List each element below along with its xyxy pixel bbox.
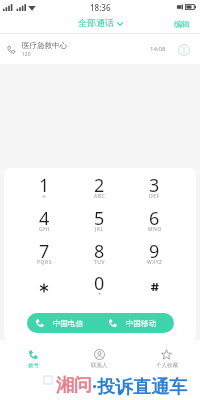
button[interactable]: 3 bbox=[127, 174, 182, 206]
staticText: 9 bbox=[149, 239, 160, 264]
staticText: 18:36 bbox=[90, 2, 111, 13]
staticText: 全部通话 bbox=[78, 17, 114, 28]
button[interactable]: 9 bbox=[127, 240, 182, 272]
staticText: DEF bbox=[149, 193, 160, 200]
staticText: 5 bbox=[94, 206, 105, 231]
button[interactable]: 6 bbox=[127, 207, 182, 239]
staticText: 3 bbox=[149, 173, 160, 198]
staticText: 医疗急救中心 bbox=[22, 41, 67, 50]
staticText: 4 bbox=[39, 206, 50, 231]
button[interactable]: 5 bbox=[72, 207, 127, 239]
staticText: ∞ bbox=[42, 193, 47, 199]
staticText: TUV bbox=[94, 259, 106, 266]
button[interactable]: 中国电信 bbox=[27, 313, 100, 333]
button[interactable]: 1 bbox=[16, 174, 72, 206]
button[interactable]: 全部通话 bbox=[74, 16, 127, 31]
staticText: 6 bbox=[149, 206, 160, 231]
staticText: 中国电信 bbox=[53, 319, 83, 328]
staticText: 8 bbox=[94, 239, 105, 264]
button[interactable]: 医疗急救中心 bbox=[0, 34, 200, 64]
staticText: 联系人 bbox=[91, 362, 108, 369]
staticText: 120 bbox=[22, 51, 31, 58]
staticText: 1 bbox=[39, 173, 50, 198]
staticText: 个人收藏 bbox=[156, 362, 178, 369]
button[interactable]: 7 bbox=[16, 240, 72, 272]
staticText: 拨号 bbox=[28, 362, 39, 369]
button[interactable]: 拨号 bbox=[0, 340, 66, 370]
staticText: WXYZ bbox=[147, 259, 163, 266]
staticText: PQRS bbox=[37, 259, 52, 266]
staticText: 7 bbox=[39, 239, 50, 264]
button[interactable]: 中国移动 bbox=[100, 313, 174, 333]
staticText: 湘问 bbox=[56, 374, 92, 397]
button[interactable]: 4 bbox=[16, 207, 72, 239]
button[interactable]: 2 bbox=[72, 174, 127, 206]
staticText: 14:08 bbox=[150, 45, 166, 53]
staticText: JKL bbox=[95, 226, 104, 233]
staticText: + bbox=[98, 291, 102, 298]
staticText: 中国移动 bbox=[126, 319, 156, 328]
button[interactable]: 0 bbox=[72, 272, 127, 304]
staticText: GHI bbox=[39, 226, 50, 233]
button[interactable] bbox=[16, 272, 72, 304]
button[interactable]: 8 bbox=[72, 240, 127, 272]
staticText: ABC bbox=[94, 193, 106, 200]
staticText: 2 bbox=[94, 173, 105, 198]
button[interactable]: Call details bbox=[177, 43, 190, 56]
button[interactable]: 个人收藏 bbox=[133, 340, 200, 370]
button[interactable] bbox=[127, 272, 182, 304]
staticText: 编辑 bbox=[174, 19, 190, 29]
button[interactable]: 联系人 bbox=[66, 340, 133, 370]
staticText: MNO bbox=[148, 226, 162, 233]
staticText: ·投诉直通车 bbox=[92, 374, 188, 399]
button[interactable]: 编辑 bbox=[168, 17, 200, 31]
staticText: 0 bbox=[94, 271, 105, 296]
